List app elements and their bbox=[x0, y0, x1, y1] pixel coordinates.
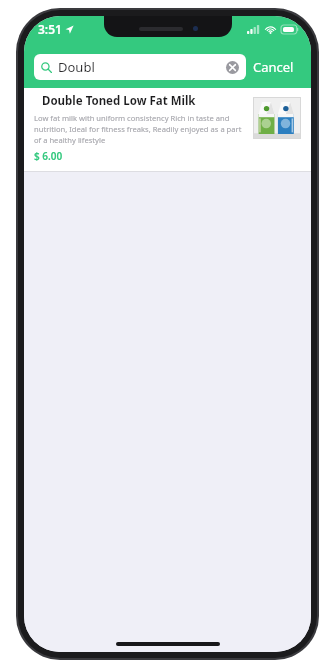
staticText: Double Toned Low Fat Milk bbox=[42, 93, 196, 109]
button[interactable]: Doubl bbox=[34, 54, 246, 80]
button[interactable]: Double Toned Low Fat Milk bbox=[24, 88, 311, 172]
staticText: Doubl bbox=[58, 58, 95, 76]
button[interactable]: Cancel bbox=[246, 54, 301, 80]
button[interactable]: Clear search bbox=[226, 61, 239, 74]
staticText: $ 6.00 bbox=[34, 149, 63, 163]
staticText: 3:51 bbox=[38, 21, 62, 37]
staticText: Low fat milk with uniform consistency Ri… bbox=[34, 113, 247, 145]
staticText: Cancel bbox=[253, 58, 294, 76]
